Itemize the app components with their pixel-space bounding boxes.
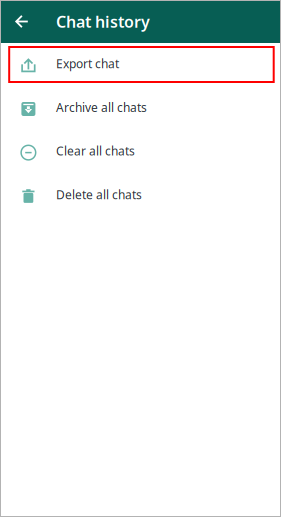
staticText: Delete all chats [56, 186, 142, 202]
button[interactable]: Export chat [0, 44, 281, 87]
button[interactable]: Clear all chats [0, 131, 281, 174]
staticText: Chat history [56, 11, 150, 32]
button[interactable]: Delete all chats [0, 174, 281, 218]
staticText: Clear all chats [56, 143, 135, 159]
staticText: Archive all chats [56, 99, 147, 115]
button[interactable]: Archive all chats [0, 87, 281, 131]
staticText: Export chat [56, 56, 119, 72]
button[interactable]: Back [0, 0, 35, 43]
